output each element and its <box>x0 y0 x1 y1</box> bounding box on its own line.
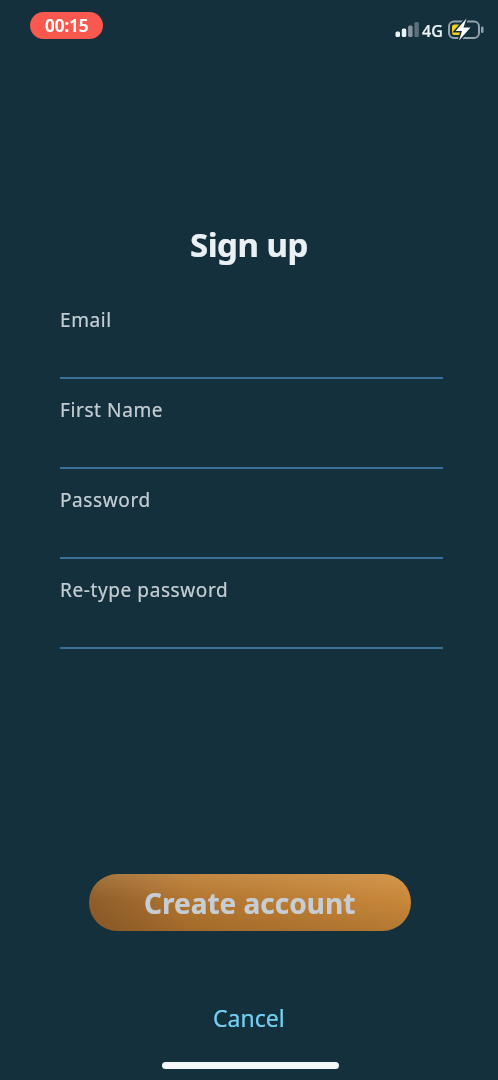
staticText: Sign up <box>190 222 308 267</box>
staticText: Email <box>60 307 112 333</box>
staticText: Password <box>60 487 151 513</box>
button[interactable]: Re-type password <box>60 567 443 649</box>
staticText: First Name <box>60 397 164 423</box>
staticText: Cancel <box>213 1002 285 1033</box>
staticText: 4G <box>422 20 443 42</box>
button[interactable]: Cancel <box>203 998 295 1037</box>
staticText: 00:15 <box>45 14 89 37</box>
button[interactable]: Create account <box>89 874 411 931</box>
staticText: Create account <box>144 884 356 922</box>
staticText: Re-type password <box>60 577 229 603</box>
button[interactable]: Password <box>60 477 443 559</box>
button[interactable]: Email <box>60 297 443 379</box>
button[interactable]: 00:15 <box>30 12 103 39</box>
button[interactable]: First Name <box>60 387 443 469</box>
